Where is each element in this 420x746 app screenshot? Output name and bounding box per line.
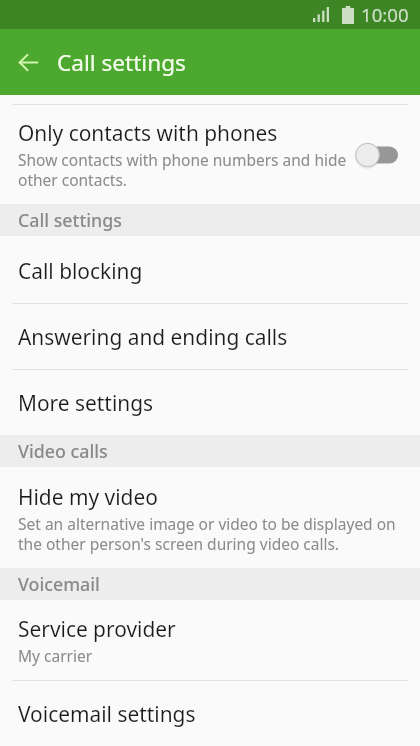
staticText: Call blocking [18,257,143,285]
staticText: More settings [18,389,154,417]
button[interactable]: Back [0,34,56,90]
button[interactable]: Call blocking [0,236,420,303]
button[interactable]: Voicemail settings [0,681,420,746]
staticText: Answering and ending calls [18,323,288,351]
staticText: Voicemail settings [18,700,196,728]
staticText: Hide my video [18,483,158,511]
staticText: Service provider [18,615,176,643]
staticText: Voicemail [18,572,100,596]
button[interactable]: Service provider [0,600,420,680]
staticText: Call settings [57,47,186,78]
staticText: Show contacts with phone numbers and hid… [18,149,349,190]
staticText: My carrier [18,645,93,666]
staticText: 10:00 [361,2,409,27]
staticText: Call settings [18,208,122,232]
staticText: Only contacts with phones [18,119,278,147]
button[interactable]: More settings [0,370,420,435]
staticText: Set an alternative image or video to be … [18,513,402,554]
button[interactable]: Hide my video [0,467,420,568]
staticText: Video calls [18,439,108,463]
button[interactable]: Answering and ending calls [0,304,420,369]
button[interactable]: Only contacts with phones [0,105,420,204]
button[interactable]: Only contacts with phones toggle [359,142,398,168]
